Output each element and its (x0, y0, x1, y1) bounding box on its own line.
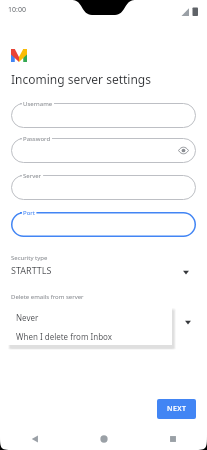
staticText: Username (23, 100, 53, 108)
staticText: NEXT (167, 404, 187, 414)
button[interactable]: When I delete from Inbox (8, 327, 172, 345)
button[interactable]: Back (28, 432, 42, 446)
staticText: Security type (11, 254, 48, 262)
button[interactable]: Delete emails from server (181, 316, 195, 328)
staticText: Port (23, 209, 35, 217)
button[interactable]: Never (8, 308, 172, 327)
staticText: Incoming server settings (11, 71, 151, 87)
button[interactable]: Home (97, 432, 111, 446)
staticText: Never (16, 312, 39, 323)
staticText: Password (23, 135, 51, 143)
button[interactable]: Username (11, 103, 196, 128)
staticText: 10:00 (8, 5, 26, 15)
button[interactable]: Security type (11, 254, 196, 280)
staticText: Delete emails from server (11, 293, 84, 301)
staticText: Server (23, 172, 42, 180)
button[interactable]: NEXT (157, 399, 196, 419)
button[interactable]: Recent apps (166, 432, 180, 446)
staticText: STARTTLS (11, 264, 52, 276)
staticText: When I delete from Inbox (16, 331, 112, 342)
button[interactable]: Show password (178, 145, 189, 156)
button[interactable]: Port (11, 212, 196, 237)
button[interactable]: Server (11, 175, 196, 200)
button[interactable]: Password (11, 138, 196, 163)
